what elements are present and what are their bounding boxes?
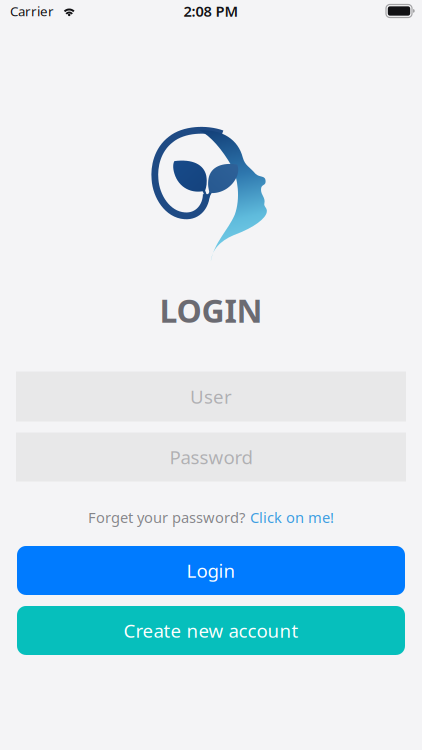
staticText: Carrier (10, 2, 54, 20)
button[interactable]: Create new account (0, 606, 422, 655)
staticText: LOGIN (159, 289, 262, 331)
staticText: Forget your password? (88, 507, 245, 527)
staticText: Login (186, 558, 235, 583)
button[interactable]: Click on me! (250, 507, 334, 527)
staticText: User (190, 384, 232, 409)
staticText: Click on me! (250, 507, 334, 527)
staticText: Password (169, 445, 252, 469)
button[interactable]: Login (0, 546, 422, 595)
staticText: 2:08 PM (183, 1, 238, 21)
staticText: Create new account (123, 618, 298, 643)
